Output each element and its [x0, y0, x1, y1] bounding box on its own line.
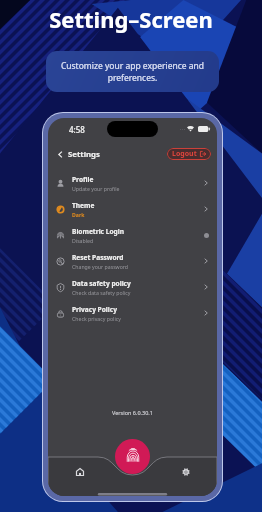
staticText: Settings [68, 149, 100, 160]
staticText: Version 6.0.30.1 [48, 409, 217, 416]
button[interactable]: Biometric Login [48, 222, 217, 248]
staticText: Change your password [72, 263, 129, 270]
button[interactable]: Theme [48, 196, 217, 222]
button[interactable]: Reset Password [48, 248, 217, 274]
staticText: Disabled [72, 237, 94, 244]
staticText: 4:58 [69, 124, 85, 135]
button[interactable]: Logout [167, 148, 211, 160]
staticText: Theme [72, 201, 95, 210]
staticText: Data safety policy [72, 279, 131, 288]
staticText: Biometric Login [72, 227, 124, 236]
button[interactable]: Profile [48, 170, 217, 196]
staticText: Customize your app experience and prefer… [59, 60, 206, 84]
staticText: Privacy Policy [72, 305, 117, 314]
button[interactable]: Privacy Policy [48, 300, 217, 326]
staticText: Check privacy policy [72, 315, 121, 322]
staticText: Logout [172, 149, 197, 159]
staticText: Update your profile [72, 185, 120, 192]
button[interactable]: Home [73, 465, 86, 478]
staticText: Dark [72, 211, 85, 218]
button[interactable]: Fingerprint login [115, 439, 150, 474]
staticText: Profile [72, 175, 94, 184]
staticText: Setting–Screen [0, 4, 262, 34]
button[interactable]: Data safety policy [48, 274, 217, 300]
button[interactable]: Settings [179, 465, 192, 478]
staticText: Reset Password [72, 253, 124, 262]
button[interactable]: Back [53, 147, 67, 161]
staticText: Check data safety policy [72, 289, 131, 296]
